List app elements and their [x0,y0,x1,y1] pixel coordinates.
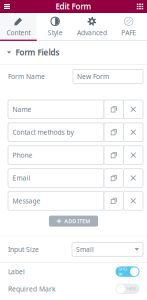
staticText: New Form [77,72,109,81]
button[interactable]: Remove Email [123,169,143,187]
button[interactable]: Duplicate Name [104,100,123,119]
button[interactable]: Label [115,266,139,277]
button[interactable]: Content [0,13,37,41]
staticText: Message [12,196,40,205]
staticText: Contact methods by [12,128,73,137]
staticText: ADD ITEM [64,218,90,225]
button[interactable]: Duplicate Contact methods by [104,123,123,141]
button[interactable]: Small [72,242,143,256]
button[interactable]: Remove Name [123,100,143,119]
button[interactable]: Remove Contact methods by [123,123,143,141]
staticText: Email [12,174,30,182]
staticText: Input Size [8,245,39,254]
staticText: SHOW [118,266,127,277]
staticText: Content [6,28,30,37]
staticText: Form Name [8,72,45,81]
staticText: Name [12,105,31,114]
button[interactable]: Duplicate Message [104,192,123,210]
staticText: Advanced [77,28,107,37]
staticText: Label [8,267,25,276]
staticText: Style [48,28,63,37]
staticText: Form Fields [15,47,59,58]
staticText: Small [76,245,94,254]
button[interactable]: Menu [0,0,14,13]
button[interactable]: Form Fields [0,41,147,64]
staticText: Required Mark [8,284,56,293]
staticText: Edit Form [55,1,91,12]
staticText: Phone [12,151,32,160]
button[interactable]: Remove Message [123,192,143,210]
button[interactable]: Advanced [73,13,110,41]
button[interactable]: ADD ITEM [49,216,98,227]
button[interactable]: Duplicate Phone [104,146,123,164]
button[interactable]: Widget panel [133,0,147,13]
button[interactable]: Duplicate Email [104,169,123,187]
button[interactable]: Style [37,13,74,41]
staticText: PAFE [121,28,136,37]
button[interactable]: PAFE [110,13,147,41]
button[interactable]: Required Mark [115,284,139,294]
staticText: HIDE [127,286,136,291]
button[interactable]: Remove Phone [123,146,143,164]
